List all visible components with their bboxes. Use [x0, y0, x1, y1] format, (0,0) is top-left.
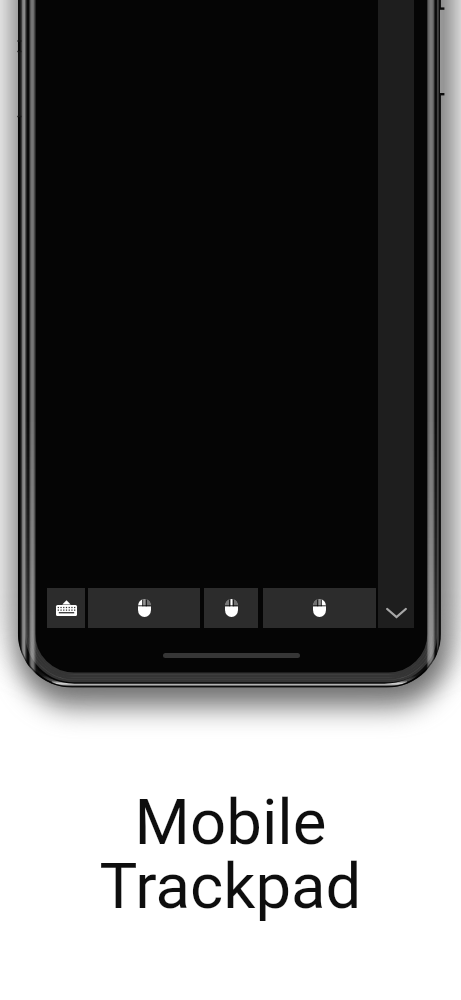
button[interactable]: Middle mouse button	[204, 588, 258, 628]
button[interactable]: Hide toolbar	[378, 588, 414, 628]
staticText: Mobile Trackpad	[0, 785, 461, 924]
button[interactable]: Right mouse button	[263, 588, 376, 628]
button[interactable]: Show keyboard	[47, 588, 85, 628]
button[interactable]: Left mouse button	[88, 588, 200, 628]
